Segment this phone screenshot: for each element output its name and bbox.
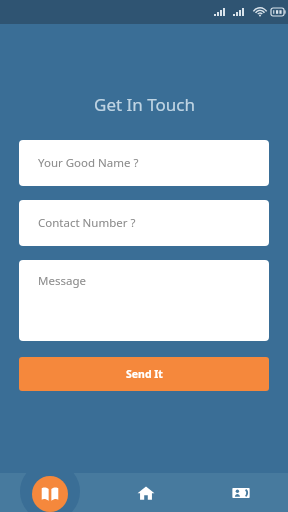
staticText: Get In Touch xyxy=(94,93,195,116)
button[interactable]: Contact Number ? xyxy=(19,200,269,246)
button[interactable]: Home xyxy=(98,473,193,512)
staticText: Send It xyxy=(126,367,163,381)
button[interactable]: Open book xyxy=(32,476,68,512)
button[interactable]: Your Good Name ? xyxy=(19,140,269,186)
button[interactable]: Contacts xyxy=(193,473,288,512)
staticText: Your Good Name ? xyxy=(38,155,139,171)
button[interactable]: Message xyxy=(19,260,269,341)
staticText: Message xyxy=(38,273,86,289)
button[interactable]: Send It xyxy=(19,357,269,391)
staticText: Contact Number ? xyxy=(38,215,136,231)
